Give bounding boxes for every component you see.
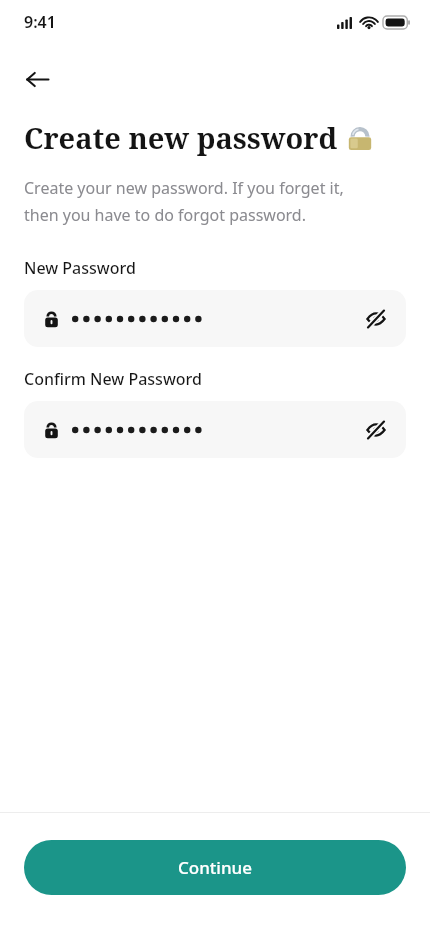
button[interactable]: Show password [24,290,406,347]
button[interactable]: Show password [354,408,398,452]
staticText: Create your new password. If you forget … [24,177,344,226]
staticText: 9:41 [24,11,56,33]
staticText: Continue [178,856,253,879]
button[interactable]: Show password [354,297,398,341]
button[interactable]: Back [14,56,60,102]
button[interactable]: Continue [24,840,406,895]
staticText: Create new password [24,118,338,157]
staticText: Confirm New Password [24,368,202,390]
button[interactable]: Show password [24,401,406,458]
staticText: New Password [24,257,136,279]
